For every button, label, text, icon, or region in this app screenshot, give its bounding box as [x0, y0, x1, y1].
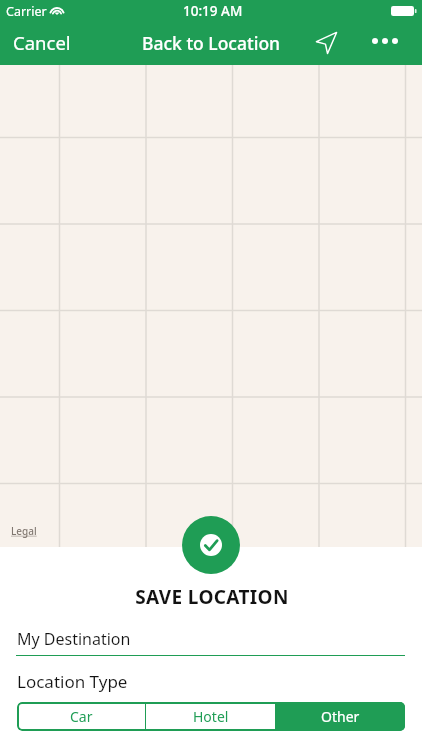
button[interactable]: Hotel	[146, 702, 275, 731]
staticText: Location Type	[17, 670, 128, 693]
staticText: Cancel	[13, 30, 71, 55]
button[interactable]: Legal	[11, 524, 37, 538]
staticText: Car	[70, 707, 93, 726]
button[interactable]: Other	[276, 702, 405, 731]
staticText: 10:19 AM	[183, 2, 243, 20]
staticText: Carrier	[6, 3, 47, 20]
staticText: Other	[321, 707, 360, 726]
button[interactable]: More options	[364, 19, 406, 63]
button[interactable]: Cancel	[0, 22, 81, 63]
staticText: Legal	[11, 524, 37, 538]
staticText: Back to Location	[142, 31, 281, 55]
button[interactable]: Save location	[182, 516, 240, 574]
staticText: My Destination	[17, 628, 131, 650]
button[interactable]: Current location	[306, 23, 346, 63]
staticText: Hotel	[193, 707, 229, 726]
button[interactable]: Car	[17, 702, 145, 731]
staticText: SAVE LOCATION	[1, 584, 422, 610]
